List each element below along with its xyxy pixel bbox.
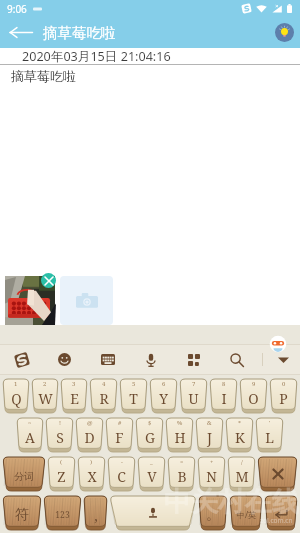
- staticText: !: [59, 419, 61, 427]
- staticText: N: [206, 467, 217, 486]
- button[interactable]: Keyboard layout: [86, 344, 129, 375]
- button[interactable]: Sogou input: [0, 344, 43, 375]
- button[interactable]: N: [198, 457, 225, 491]
- staticText: 6: [162, 380, 166, 388]
- button[interactable]: X: [78, 457, 105, 491]
- staticText: Q: [11, 389, 22, 408]
- button[interactable]: R: [90, 379, 117, 413]
- button[interactable]: S: [46, 418, 73, 452]
- staticText: V: [147, 467, 157, 486]
- button[interactable]: B: [168, 457, 195, 491]
- button[interactable]: L: [256, 418, 283, 452]
- button[interactable]: Search: [215, 344, 258, 375]
- button[interactable]: J: [196, 418, 223, 452]
- button[interactable]: O: [240, 379, 267, 413]
- button[interactable]: M: [228, 457, 255, 491]
- staticText: 4: [102, 380, 106, 388]
- staticText: Z: [57, 467, 66, 486]
- button[interactable]: Emoji: [43, 344, 86, 375]
- staticText: 0: [282, 380, 286, 388]
- button[interactable]: A: [17, 418, 43, 452]
- button[interactable]: 符: [3, 496, 41, 530]
- staticText: 2020年03月15日 21:04:16: [22, 48, 171, 64]
- button[interactable]: U: [180, 379, 207, 413]
- staticText: X: [87, 467, 97, 486]
- staticText: M: [235, 467, 249, 486]
- staticText: G: [145, 428, 155, 447]
- staticText: P: [279, 389, 288, 408]
- button[interactable]: G: [136, 418, 163, 452]
- staticText: 3: [72, 380, 76, 388]
- button[interactable]: More tools: [172, 344, 215, 375]
- button[interactable]: Tips: [275, 23, 294, 42]
- staticText: Y: [159, 389, 168, 408]
- staticText: 摘草莓吃啦: [11, 68, 76, 84]
- staticText: T: [129, 389, 138, 408]
- button[interactable]: 分词: [3, 457, 45, 491]
- staticText: -: [121, 458, 123, 466]
- staticText: 9:06: [7, 2, 27, 16]
- button[interactable]: Y: [150, 379, 177, 413]
- staticText: ): [90, 458, 93, 466]
- staticText: W: [38, 389, 53, 408]
- staticText: 。: [206, 506, 220, 524]
- button[interactable]: D: [76, 418, 103, 452]
- button[interactable]: P: [270, 379, 297, 413]
- button[interactable]: Z: [48, 457, 75, 491]
- button[interactable]: [110, 496, 196, 530]
- staticText: B: [177, 467, 187, 486]
- button[interactable]: Hide keyboard: [266, 344, 300, 375]
- button[interactable]: C: [108, 457, 135, 491]
- staticText: 9: [252, 380, 256, 388]
- staticText: 5: [132, 380, 136, 388]
- staticText: 中/英: [236, 509, 257, 521]
- staticText: 符: [15, 506, 29, 524]
- button[interactable]: Voice input: [129, 344, 172, 375]
- button[interactable]: Back: [8, 17, 34, 48]
- staticText: C: [117, 467, 126, 486]
- staticText: (: [60, 458, 63, 466]
- staticText: 分词: [14, 470, 34, 483]
- button[interactable]: W: [32, 379, 58, 413]
- button[interactable]: 123: [44, 496, 81, 530]
- button[interactable]: Assistant: [269, 335, 287, 353]
- staticText: ~: [28, 419, 32, 427]
- staticText: F: [115, 428, 124, 447]
- staticText: R: [99, 389, 109, 408]
- staticText: =: [180, 458, 184, 466]
- staticText: 123: [55, 509, 70, 521]
- button[interactable]: Remove photo: [41, 273, 56, 288]
- button[interactable]: [265, 496, 297, 530]
- staticText: 2: [43, 380, 47, 388]
- staticText: ': [269, 419, 271, 427]
- button[interactable]: Q: [3, 379, 29, 413]
- button[interactable]: V: [138, 457, 165, 491]
- staticText: %: [177, 419, 183, 427]
- staticText: D: [84, 428, 95, 447]
- staticText: L: [265, 428, 274, 447]
- staticText: &: [207, 419, 212, 427]
- button[interactable]: E: [61, 379, 87, 413]
- staticText: #: [118, 419, 122, 427]
- button[interactable]: I: [210, 379, 237, 413]
- button[interactable]: Photo: [5, 276, 55, 325]
- button[interactable]: ,: [84, 496, 107, 530]
- button[interactable]: T: [120, 379, 147, 413]
- button[interactable]: F: [106, 418, 133, 452]
- staticText: A: [25, 428, 35, 447]
- staticText: 摘草莓吃啦: [43, 24, 116, 42]
- staticText: *: [238, 419, 242, 427]
- staticText: O: [248, 389, 259, 408]
- staticText: 8: [222, 380, 226, 388]
- staticText: S: [56, 428, 64, 447]
- button[interactable]: Add photo: [60, 276, 113, 325]
- button[interactable]: 中/英: [230, 496, 262, 530]
- button[interactable]: [258, 457, 297, 491]
- staticText: J: [207, 428, 212, 447]
- staticText: _: [150, 458, 153, 466]
- button[interactable]: 。: [199, 496, 227, 530]
- staticText: /: [241, 458, 243, 466]
- button[interactable]: H: [166, 418, 193, 452]
- button[interactable]: K: [226, 418, 253, 452]
- staticText: ,: [94, 506, 98, 525]
